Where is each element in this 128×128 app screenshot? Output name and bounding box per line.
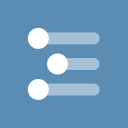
- button[interactable]: Brightness: [28, 28, 100, 49]
- button[interactable]: Contrast: [28, 79, 100, 100]
- button[interactable]: Volume: [47, 53, 100, 74]
